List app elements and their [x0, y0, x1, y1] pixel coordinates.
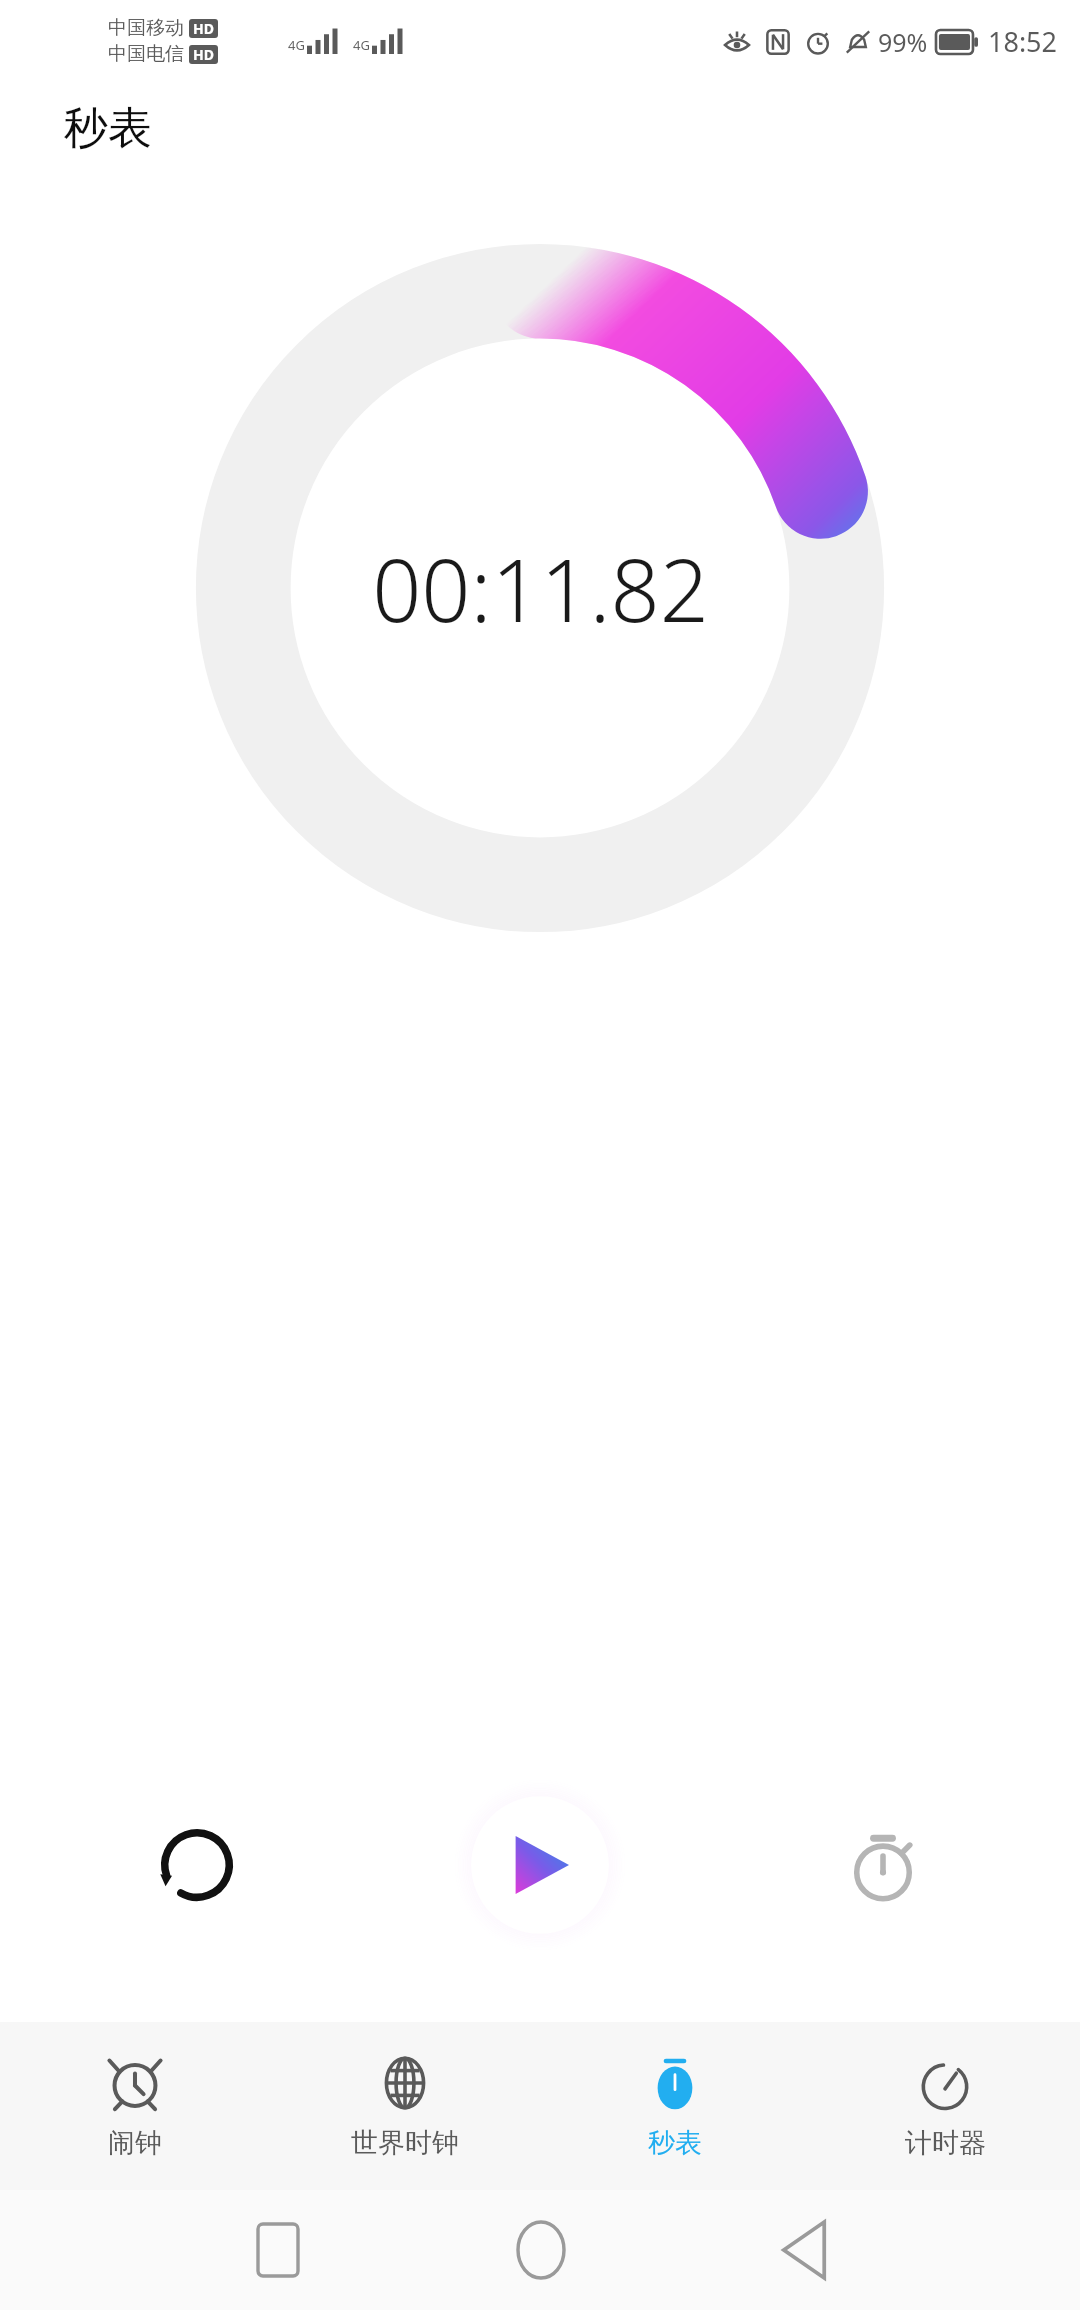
staticText: 18:52: [988, 23, 1058, 60]
staticText: 中国移动: [108, 16, 184, 40]
staticText: 4G: [288, 36, 305, 54]
button[interactable]: 闹钟: [0, 2022, 270, 2190]
staticText: 99%: [878, 25, 928, 59]
staticText: 4G: [353, 36, 370, 54]
button[interactable]: Recents: [146, 2190, 409, 2310]
staticText: 秒表: [64, 101, 152, 156]
staticText: 闹钟: [108, 2126, 162, 2160]
button[interactable]: 计时器: [810, 2022, 1080, 2190]
button[interactable]: Reset: [142, 1810, 252, 1920]
button[interactable]: Back: [672, 2190, 935, 2310]
staticText: 计时器: [905, 2126, 986, 2160]
staticText: HD: [193, 19, 214, 38]
button[interactable]: 秒表: [540, 2022, 810, 2190]
button[interactable]: Lap: [828, 1810, 938, 1920]
button[interactable]: Home: [409, 2190, 672, 2310]
button[interactable]: 00:11.82: [170, 218, 910, 958]
button[interactable]: Start: [454, 1779, 626, 1951]
staticText: HD: [193, 45, 214, 64]
staticText: 中国电信: [108, 42, 184, 66]
staticText: 00:11.82: [372, 530, 709, 647]
staticText: 世界时钟: [351, 2126, 459, 2160]
staticText: 秒表: [648, 2126, 702, 2160]
button[interactable]: 世界时钟: [270, 2022, 540, 2190]
